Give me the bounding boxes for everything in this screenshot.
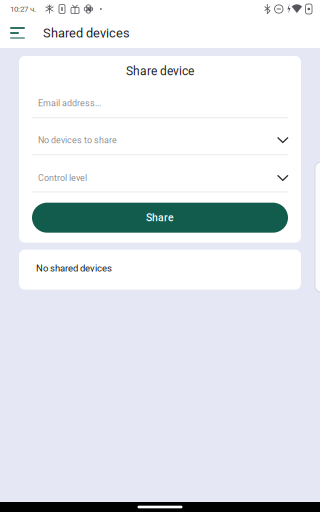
button[interactable]: Menu xyxy=(0,18,43,47)
staticText: Shared devices xyxy=(43,25,130,40)
staticText: 10:27 ч. xyxy=(10,4,36,14)
staticText: Email address... xyxy=(38,98,101,109)
staticText: Share device xyxy=(126,64,194,78)
staticText: Control level xyxy=(38,173,87,183)
staticText: No devices to share xyxy=(38,135,117,145)
staticText: Share xyxy=(146,212,174,224)
staticText: No shared devices xyxy=(36,263,112,274)
button[interactable]: Share xyxy=(32,203,288,233)
